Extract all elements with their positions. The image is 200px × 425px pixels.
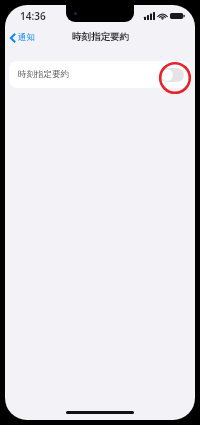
button[interactable]: 通知 (5, 29, 41, 46)
staticText: 時刻指定要約 (72, 31, 129, 43)
button[interactable]: 時刻指定要約 toggle, off (160, 68, 184, 82)
staticText: 通知 (18, 32, 35, 43)
button[interactable]: 時刻指定要約 (9, 61, 191, 88)
staticText: 14:36 (20, 9, 46, 23)
staticText: 時刻指定要約 (18, 69, 69, 80)
